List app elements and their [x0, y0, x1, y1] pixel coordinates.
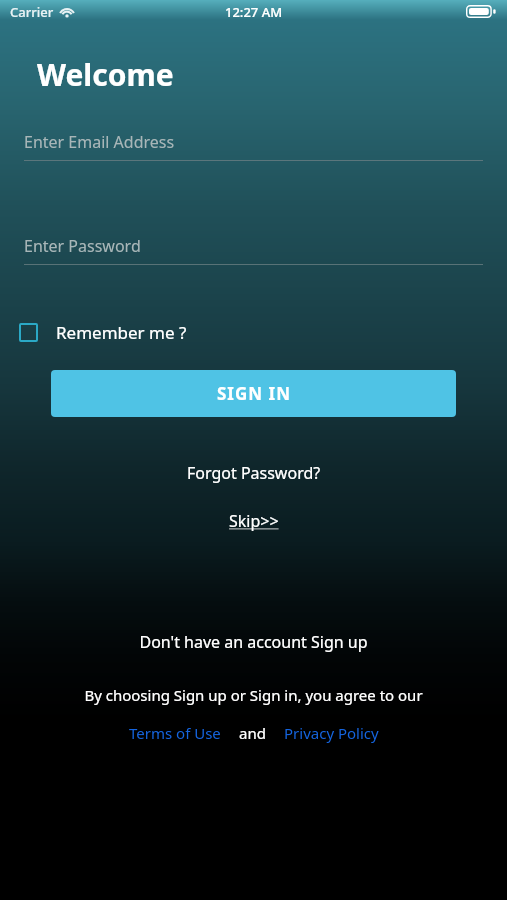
- staticText: Don't have an account Sign up: [139, 631, 368, 653]
- staticText: Forgot Password?: [187, 462, 321, 484]
- button[interactable]: Terms of Use: [125, 720, 225, 746]
- staticText: 12:27 AM: [225, 3, 283, 21]
- staticText: By choosing Sign up or Sign in, you agre…: [84, 685, 423, 705]
- staticText: Privacy Policy: [284, 723, 379, 743]
- button[interactable]: SIGN IN: [51, 370, 456, 417]
- staticText: Terms of Use: [129, 723, 221, 743]
- staticText: SIGN IN: [217, 382, 291, 405]
- other: Battery full: [466, 5, 496, 18]
- button[interactable]: Forgot Password?: [177, 458, 331, 488]
- other: Wi-Fi signal: [59, 5, 75, 18]
- staticText: Enter Password: [24, 235, 141, 257]
- staticText: Welcome: [37, 54, 174, 95]
- staticText: Skip>>: [229, 510, 279, 532]
- staticText: Carrier: [10, 3, 54, 21]
- button[interactable]: Remember me ?: [13, 317, 197, 348]
- staticText: and: [239, 723, 266, 743]
- staticText: Remember me ?: [56, 321, 187, 344]
- button[interactable]: Don't have an account Sign up: [129, 628, 378, 656]
- staticText: Enter Email Address: [24, 131, 175, 153]
- button[interactable]: Privacy Policy: [280, 720, 383, 746]
- button[interactable]: Skip>>: [219, 507, 289, 535]
